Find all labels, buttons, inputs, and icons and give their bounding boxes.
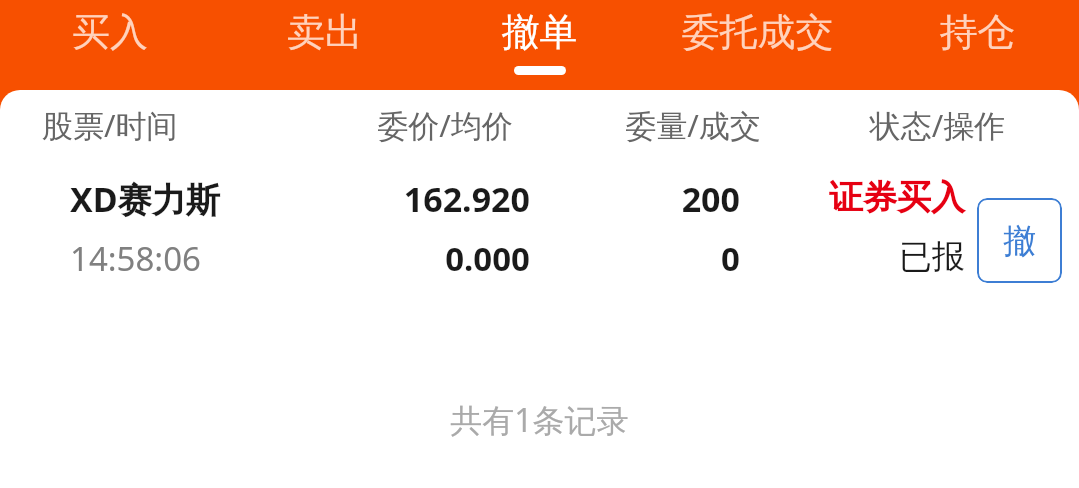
- staticText: XD赛力斯: [70, 176, 330, 222]
- staticText: 委量/成交: [583, 104, 803, 146]
- button[interactable]: 卖出: [250, 0, 400, 90]
- staticText: 已报: [760, 236, 965, 278]
- staticText: 撤: [1003, 220, 1036, 262]
- staticText: 买入: [35, 8, 185, 56]
- button[interactable]: 撤单: [462, 0, 617, 90]
- staticText: 0.000: [300, 236, 530, 281]
- button[interactable]: 撤单: [977, 198, 1062, 283]
- staticText: 委托成交: [650, 8, 865, 56]
- button[interactable]: XD赛力斯: [0, 158, 1079, 303]
- staticText: 14:58:06: [70, 236, 330, 281]
- staticText: 162.920: [300, 176, 530, 222]
- staticText: 证券买入: [760, 176, 965, 219]
- staticText: 卖出: [250, 8, 400, 56]
- staticText: 股票/时间: [42, 104, 282, 146]
- staticText: 持仓: [900, 8, 1055, 56]
- staticText: 状态/操作: [825, 104, 1050, 146]
- staticText: 共有1条记录: [450, 398, 629, 442]
- button[interactable]: 持仓: [900, 0, 1055, 90]
- staticText: 0: [560, 236, 740, 281]
- staticText: 撤单: [462, 8, 617, 56]
- button[interactable]: 委托成交: [650, 0, 865, 90]
- button[interactable]: 买入: [35, 0, 185, 90]
- staticText: 委价/均价: [330, 104, 560, 146]
- staticText: 200: [560, 176, 740, 222]
